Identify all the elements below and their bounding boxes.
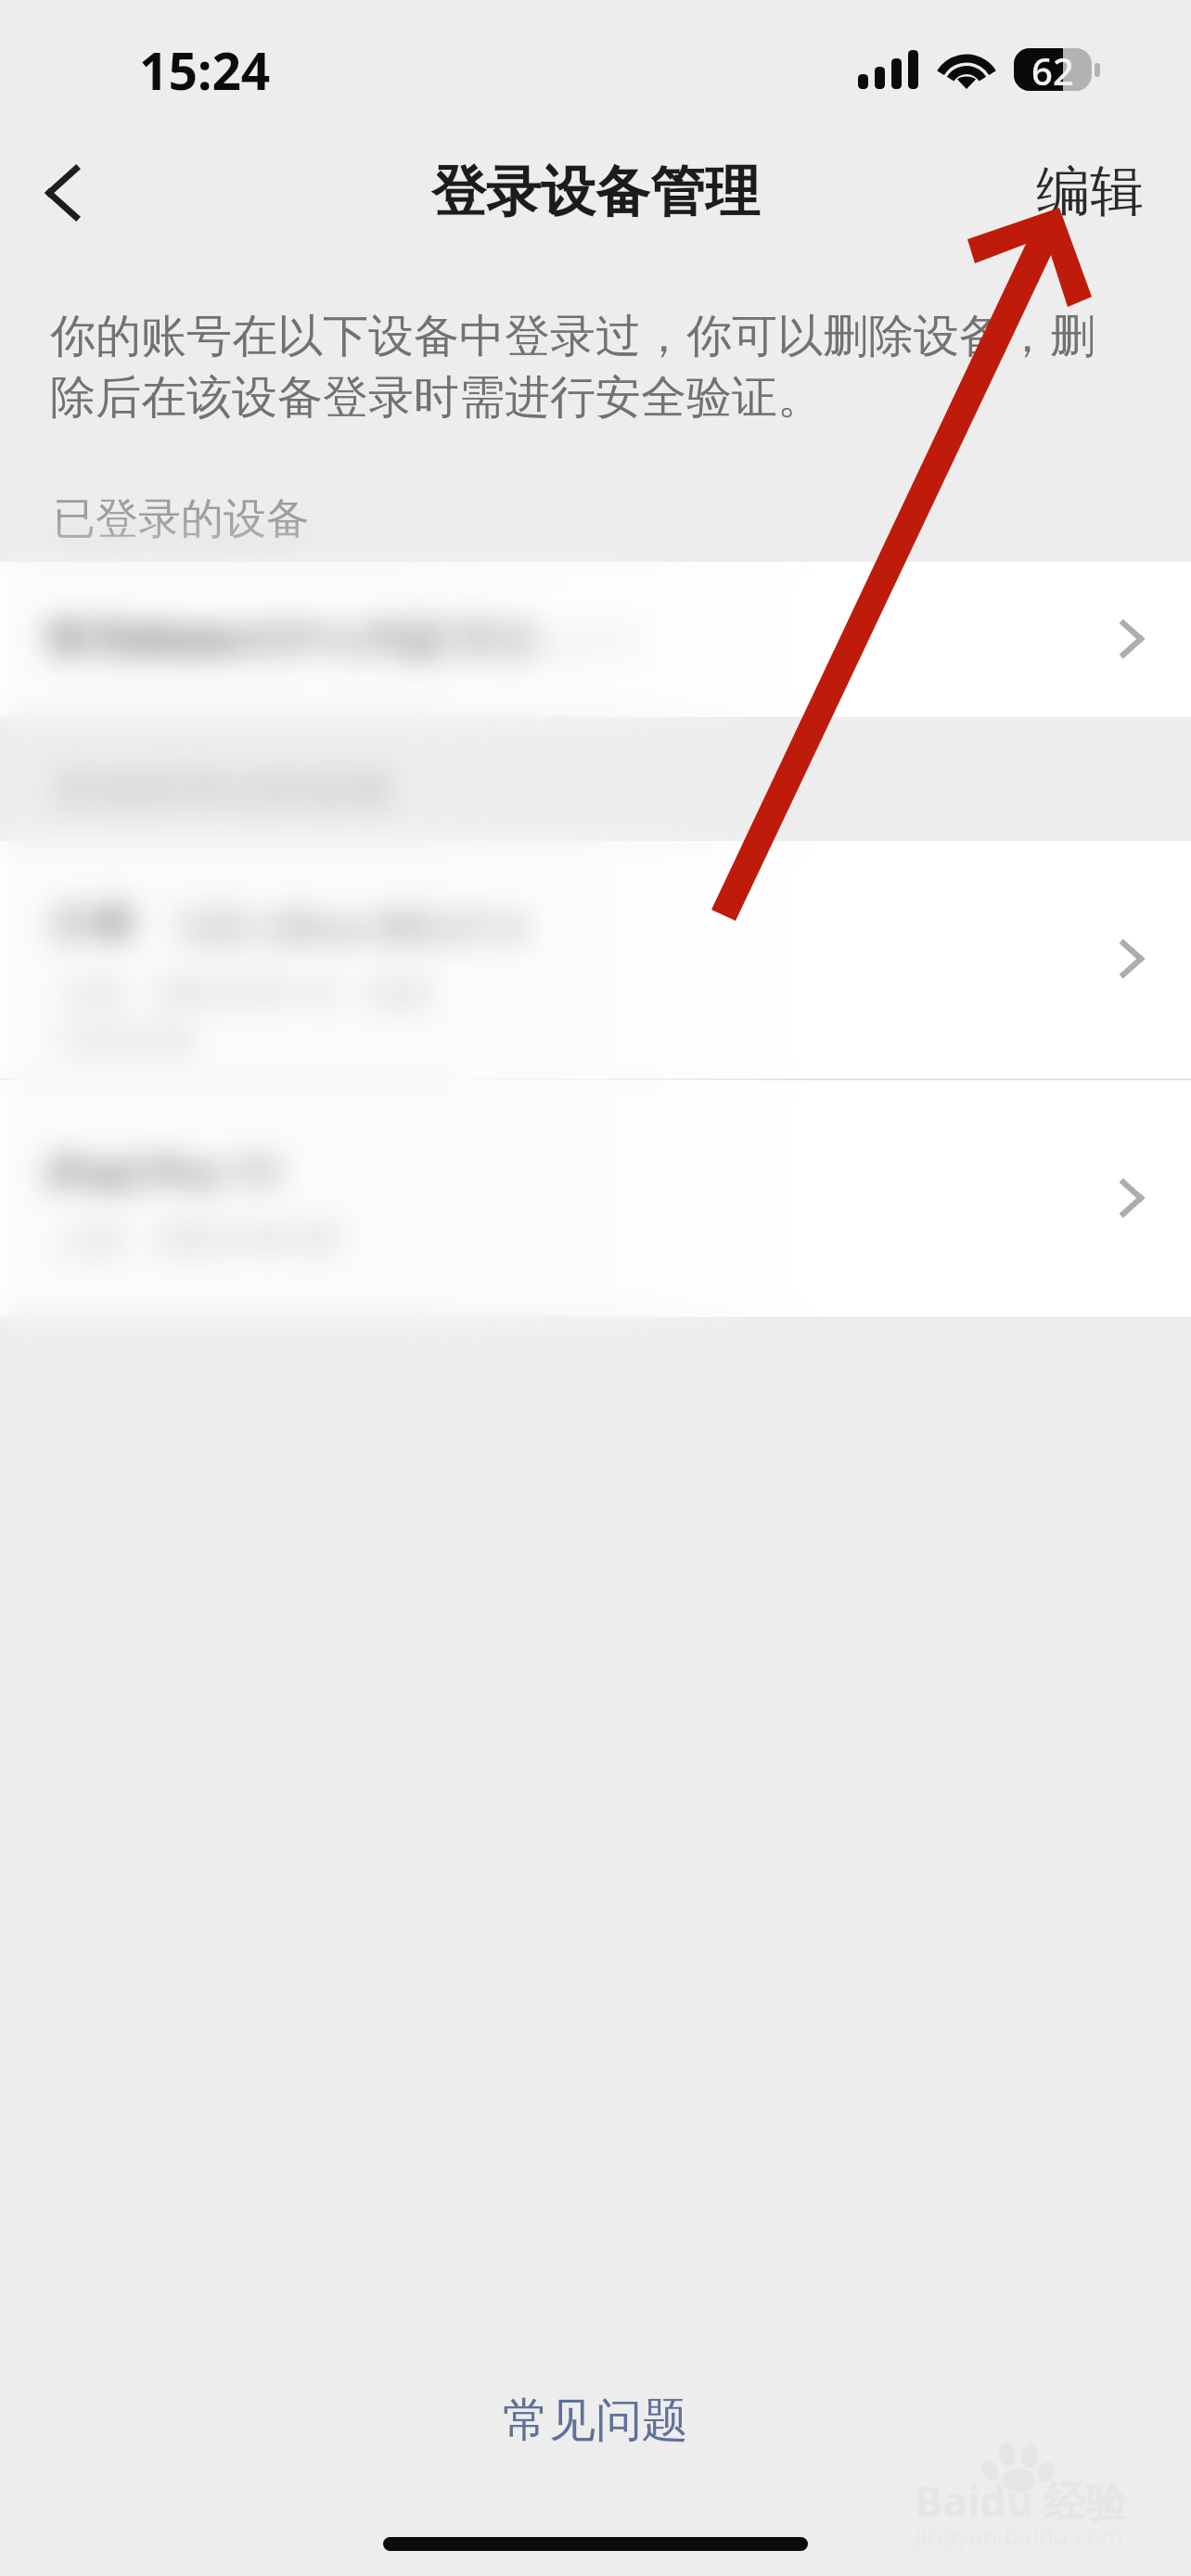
button[interactable]: 常见问题 <box>462 2375 729 2464</box>
staticText: HarmonyOS <box>422 612 645 665</box>
staticText: 你的账号在以下设备中登录过，你可以删除设备，删 除后在该设备登录时需进行安全验证… <box>50 308 1095 427</box>
staticText: 15:24 <box>139 35 271 105</box>
staticText: 40Pro鸿蒙系统 <box>240 607 541 669</box>
staticText: Baidu 经验 <box>915 2472 1128 2529</box>
staticText: 登录设备管理 <box>431 158 760 226</box>
button[interactable]: 查看设备详情 <box>1093 1161 1167 1235</box>
staticText: iPad Pro 11 <box>46 1141 283 1202</box>
staticText: 62 <box>1031 45 1074 88</box>
staticText: 华为Mate <box>45 607 240 669</box>
button[interactable]: 查看设备详情 <box>1093 602 1167 676</box>
button[interactable]: 查看设备详情 <box>1093 922 1167 996</box>
staticText: 12S Ultra MIUI14 <box>137 896 528 956</box>
button[interactable]: 返回 <box>0 137 108 245</box>
button[interactable]: 编辑 <box>1011 139 1169 243</box>
staticText: 常见问题 <box>503 2391 688 2447</box>
staticText: 编辑 <box>1036 158 1144 225</box>
staticText: 小米 <box>48 896 137 951</box>
staticText: 已登录的设备 <box>53 492 309 546</box>
staticText: 已登录的设备 <box>53 492 309 546</box>
